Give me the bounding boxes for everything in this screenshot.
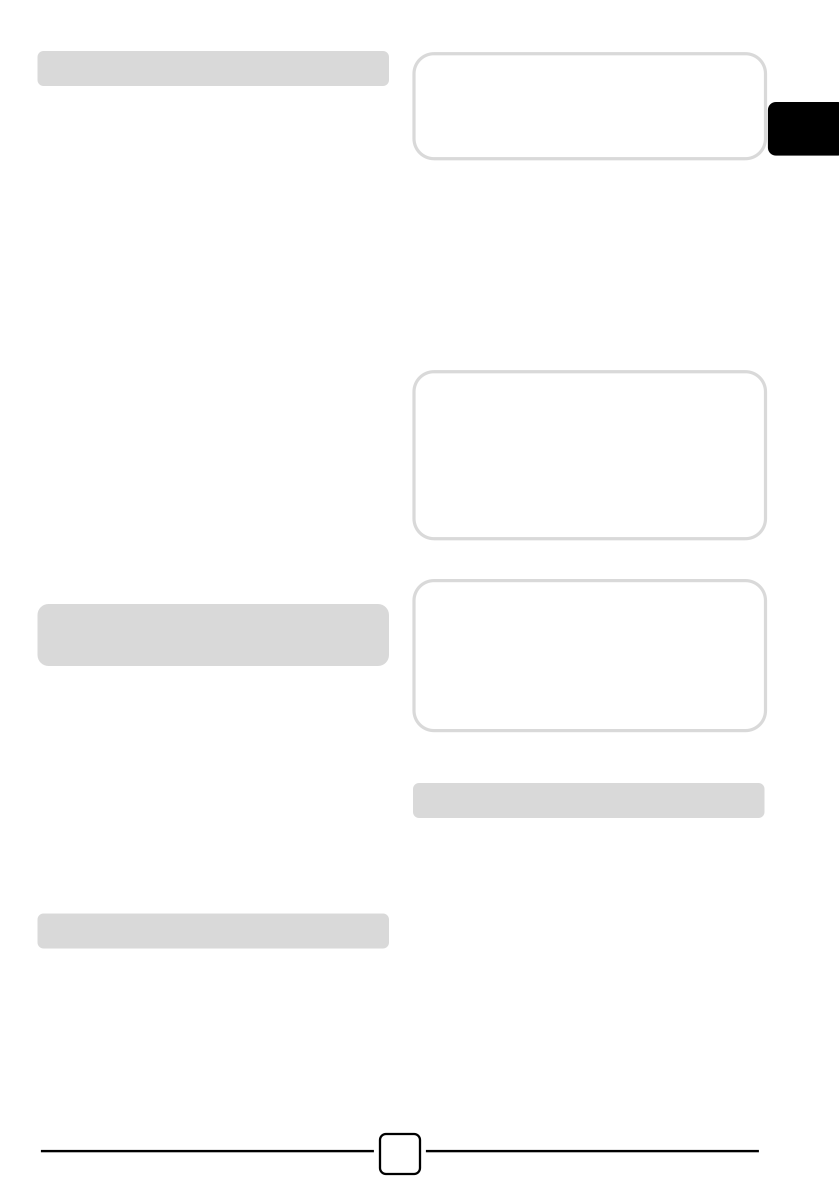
button[interactable]: Compose [380,1134,420,1174]
button[interactable]: Card 1 [414,54,765,159]
button[interactable]: Card 2 [414,372,765,539]
button[interactable]: Card 3 [414,581,765,731]
button[interactable]: Badge [768,102,839,156]
